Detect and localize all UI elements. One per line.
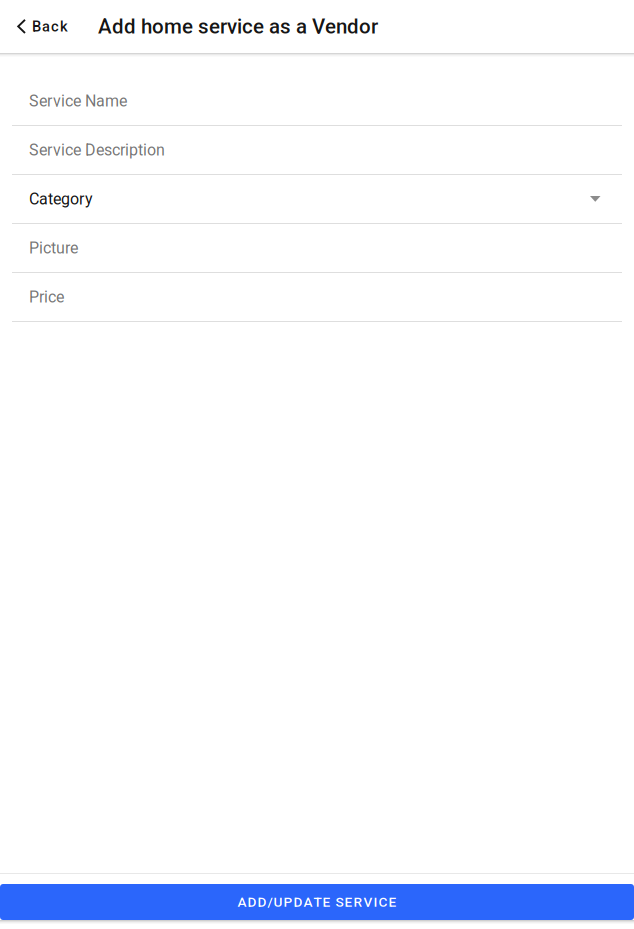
staticText: B a c k — [32, 18, 68, 35]
staticText: Price — [29, 288, 64, 306]
staticText: Add home service as a Vendor — [98, 14, 378, 38]
button[interactable]: Service Name — [0, 77, 634, 126]
button[interactable]: B a c k — [0, 0, 82, 53]
staticText: Picture — [29, 239, 78, 257]
staticText: Service Name — [29, 92, 127, 110]
staticText: Service Description — [29, 141, 165, 159]
button[interactable]: Service Description — [0, 126, 634, 175]
button[interactable]: A D D / U P D A T E S E R V I C E — [0, 884, 634, 920]
staticText: Category — [29, 190, 93, 208]
button[interactable]: Picture — [0, 224, 634, 273]
button[interactable]: Price — [0, 273, 634, 322]
button[interactable]: Category — [0, 175, 634, 224]
staticText: A D D / U P D A T E S E R V I C E — [237, 894, 396, 910]
